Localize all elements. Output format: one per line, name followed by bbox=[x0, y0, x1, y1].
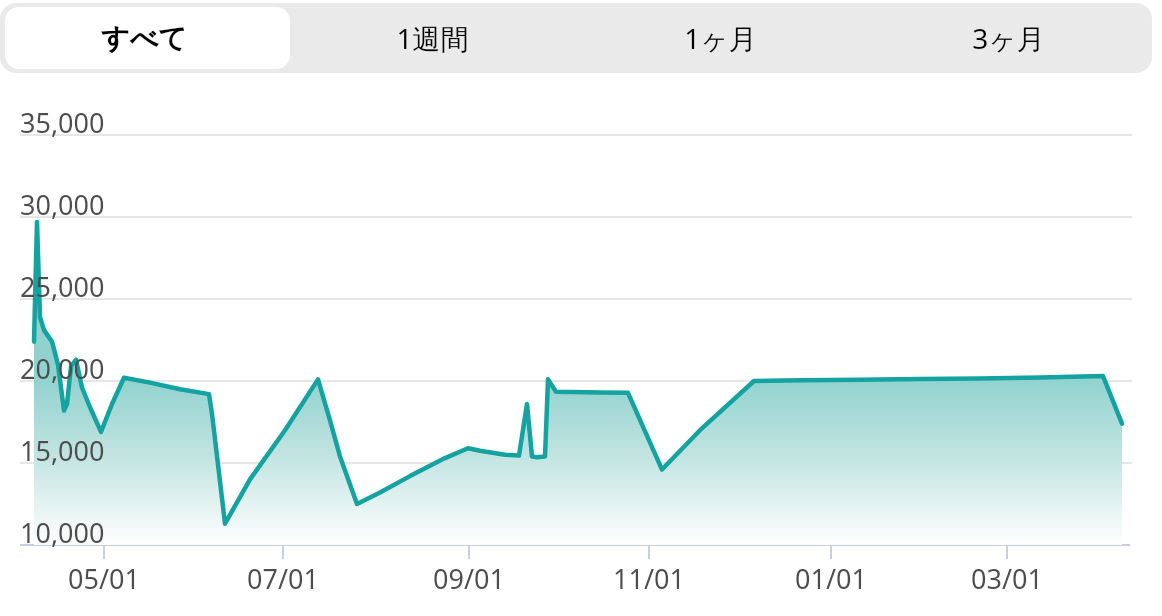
staticText: 20,000 bbox=[20, 350, 105, 387]
staticText: 03/01 bbox=[952, 560, 1062, 597]
staticText: 01/01 bbox=[776, 560, 886, 597]
staticText: すべて bbox=[101, 21, 187, 56]
button[interactable]: 1ヶ月 bbox=[576, 3, 864, 73]
staticText: 25,000 bbox=[20, 268, 105, 305]
button[interactable]: 1週間 bbox=[288, 3, 576, 73]
button[interactable]: すべて bbox=[0, 3, 288, 73]
staticText: 09/01 bbox=[414, 560, 524, 597]
staticText: 11/01 bbox=[594, 560, 704, 597]
button[interactable]: 3ヶ月 bbox=[864, 3, 1152, 73]
staticText: 35,000 bbox=[20, 104, 105, 141]
staticText: 15,000 bbox=[20, 432, 105, 469]
staticText: 30,000 bbox=[20, 186, 105, 223]
staticText: 1ヶ月 bbox=[684, 19, 757, 57]
staticText: 05/01 bbox=[49, 560, 159, 597]
staticText: 10,000 bbox=[20, 514, 105, 551]
staticText: 1週間 bbox=[396, 19, 469, 57]
staticText: 3ヶ月 bbox=[972, 19, 1045, 57]
staticText: 07/01 bbox=[228, 560, 338, 597]
